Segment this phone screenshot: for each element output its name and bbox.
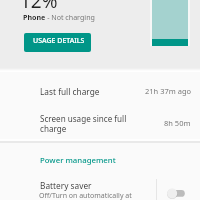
- staticText: Phone - Not charging: [23, 12, 95, 22]
- staticText: USAGE DETAILS: [33, 36, 85, 46]
- button[interactable]: [0, 175, 156, 200]
- button[interactable]: [0, 70, 200, 113]
- staticText: Power management: [40, 155, 116, 166]
- staticText: 21h 37m ago: [145, 86, 192, 96]
- button[interactable]: USAGE DETAILS: [24, 33, 91, 52]
- staticText: Last full charge: [40, 86, 100, 97]
- staticText: Screen usage since full charge: [40, 113, 150, 134]
- button[interactable]: [0, 113, 200, 142]
- staticText: Battery saver: [40, 180, 92, 191]
- staticText: 8h 50m: [164, 118, 191, 128]
- staticText: Off/Turn on automatically at: [39, 191, 132, 200]
- button[interactable]: Toggle Battery saver: [157, 175, 200, 200]
- staticText: 12%: [20, 0, 58, 14]
